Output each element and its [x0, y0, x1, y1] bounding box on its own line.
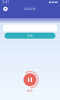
button[interactable]: Back: [2, 6, 9, 12]
staticText: 暂停: [27, 89, 33, 92]
button[interactable]: 开始: [0, 33, 60, 39]
staticText: 开始: [27, 34, 33, 37]
staticText: 运动记录: [24, 7, 36, 11]
staticText: 9:41: [2, 0, 9, 4]
button[interactable]: Pause: [21, 71, 39, 89]
